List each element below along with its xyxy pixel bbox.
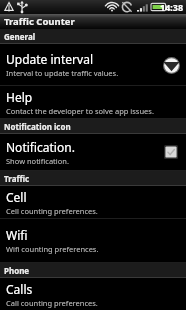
button[interactable]: Choose update interval (160, 54, 182, 76)
staticText: Traffic (4, 173, 30, 184)
button[interactable]: Update interval (0, 44, 186, 85)
staticText: Call counting preferences. (6, 298, 98, 308)
staticText: Update interval (6, 51, 93, 67)
staticText: Calls (6, 281, 33, 297)
button[interactable]: Notification. (0, 134, 186, 170)
staticText: 14:38 (160, 1, 184, 13)
staticText: Contact the developer to solve app issue… (6, 106, 154, 116)
button[interactable]: Help (0, 86, 186, 118)
button[interactable]: Show notification toggle (160, 141, 182, 163)
staticText: Cell (6, 189, 27, 205)
staticText: General (4, 31, 36, 42)
staticText: Show notification. (6, 156, 69, 166)
staticText: Interval to update traffic values. (6, 68, 119, 78)
staticText: Wifi counting preferences. (6, 244, 99, 254)
staticText: Traffic Counter (4, 15, 75, 28)
staticText: Cell counting preferences. (6, 206, 98, 216)
button[interactable]: Cell (0, 186, 186, 218)
staticText: Phone (4, 265, 30, 276)
button[interactable]: Calls (0, 278, 186, 310)
button[interactable]: Wifi (0, 219, 186, 262)
staticText: Notification icon (4, 121, 71, 132)
staticText: Notification. (6, 139, 75, 155)
staticText: Help (6, 89, 33, 105)
staticText: Wifi (6, 227, 28, 243)
